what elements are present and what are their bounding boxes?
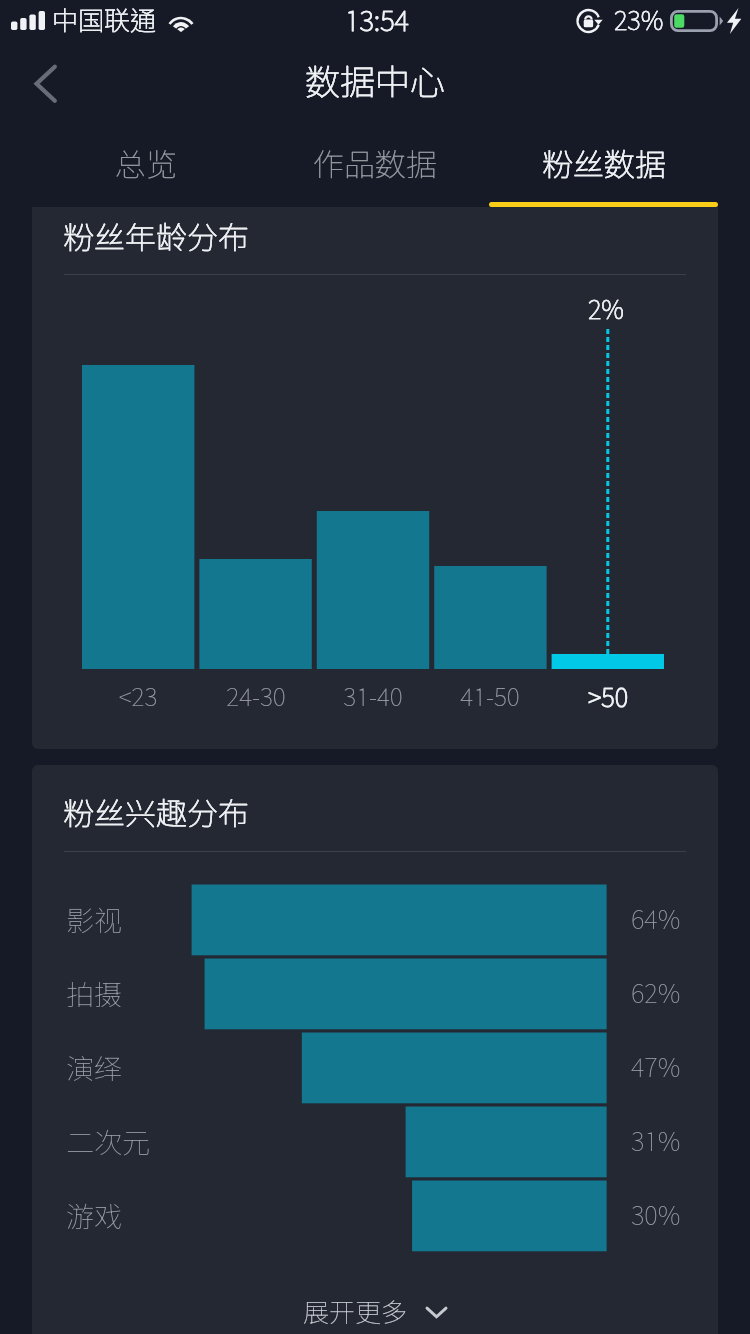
staticText: 62% bbox=[631, 978, 681, 1009]
button[interactable]: 作品数据 bbox=[260, 130, 489, 207]
button[interactable]: Back bbox=[10, 49, 72, 121]
staticText: 30% bbox=[631, 1200, 681, 1231]
staticText: 影视 bbox=[66, 904, 123, 937]
staticText: 23% bbox=[614, 5, 664, 36]
staticText: 粉丝年龄分布 bbox=[63, 219, 249, 256]
button[interactable]: 总览 bbox=[32, 130, 260, 207]
staticText: 粉丝数据 bbox=[542, 146, 666, 183]
staticText: 41-50 bbox=[430, 682, 550, 712]
staticText: 31-40 bbox=[313, 682, 433, 712]
staticText: 数据中心 bbox=[305, 61, 446, 102]
staticText: 31-40 bbox=[313, 682, 433, 712]
staticText: 二次元 bbox=[66, 1126, 151, 1159]
staticText: 粉丝兴趣分布 bbox=[63, 795, 249, 832]
button[interactable]: 粉丝数据 bbox=[489, 130, 718, 207]
staticText: 拍摄 bbox=[66, 978, 123, 1011]
staticText: 粉丝数据 bbox=[542, 146, 666, 183]
staticText: 47% bbox=[631, 1052, 681, 1083]
staticText: 23% bbox=[614, 5, 664, 36]
staticText: 展开更多 bbox=[303, 1297, 408, 1328]
staticText: 粉丝年龄分布 bbox=[63, 219, 249, 256]
staticText: 总览 bbox=[115, 146, 177, 183]
staticText: 中国联通 bbox=[52, 5, 157, 36]
staticText: <23 bbox=[78, 682, 198, 712]
staticText: 总览 bbox=[115, 146, 177, 183]
staticText: 2% bbox=[566, 294, 646, 325]
staticText: 中国联通 bbox=[52, 5, 157, 36]
staticText: <23 bbox=[78, 682, 198, 712]
staticText: >50 bbox=[548, 682, 668, 713]
staticText: 游戏 bbox=[66, 1200, 123, 1233]
staticText: 13:54 bbox=[345, 4, 409, 37]
staticText: 41-50 bbox=[430, 682, 550, 712]
staticText: 2% bbox=[566, 294, 646, 325]
staticText: 作品数据 bbox=[313, 146, 437, 183]
staticText: 31% bbox=[631, 1126, 681, 1157]
staticText: 演绎 bbox=[66, 1052, 123, 1085]
staticText: 64% bbox=[631, 904, 681, 935]
staticText: 数据中心 bbox=[305, 61, 446, 102]
staticText: >50 bbox=[548, 682, 668, 713]
staticText: 24-30 bbox=[196, 682, 316, 712]
button[interactable]: 展开更多 bbox=[32, 1281, 718, 1334]
staticText: 13:54 bbox=[345, 4, 409, 37]
staticText: 24-30 bbox=[196, 682, 316, 712]
staticText: 作品数据 bbox=[313, 146, 437, 183]
staticText: 粉丝兴趣分布 bbox=[63, 795, 249, 832]
